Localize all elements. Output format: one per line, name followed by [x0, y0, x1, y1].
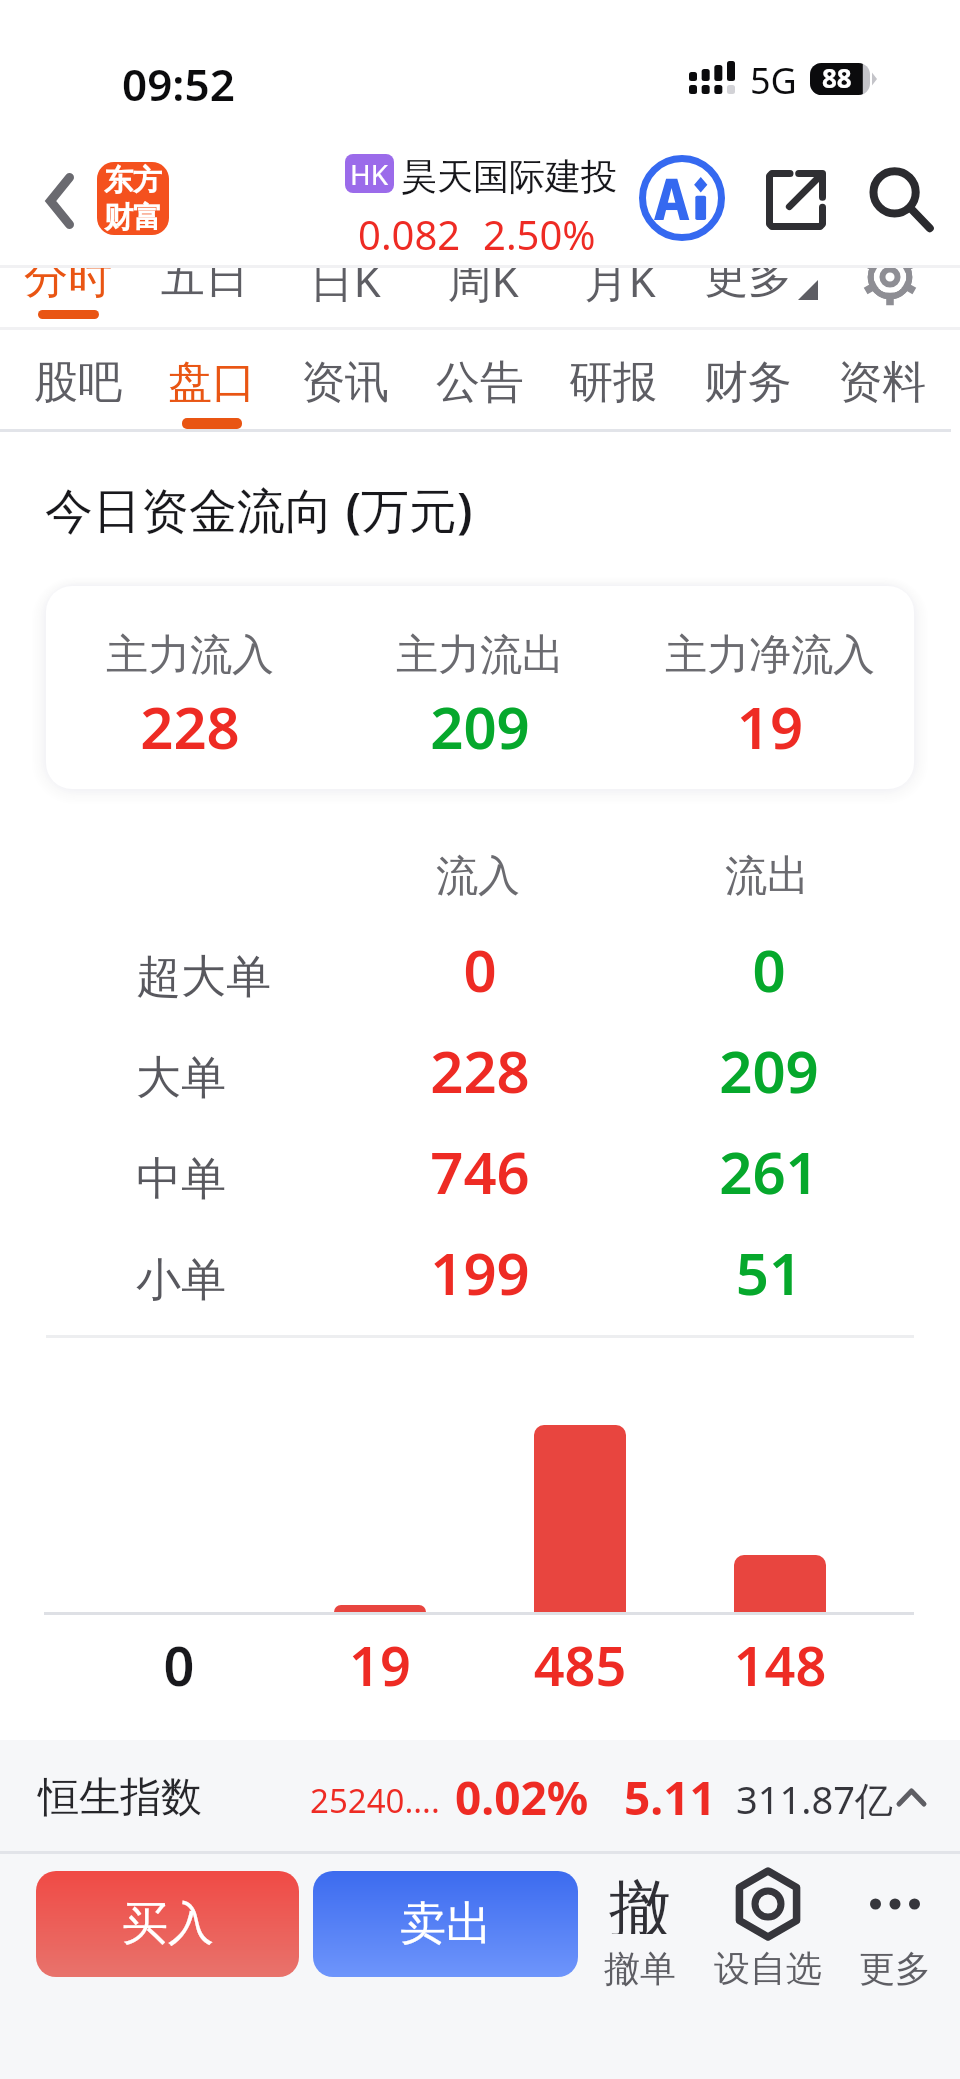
- button[interactable]: Share: [751, 155, 841, 245]
- staticText: 买入: [122, 1895, 214, 1953]
- button[interactable]: 资讯: [279, 327, 411, 432]
- staticText: 0: [619, 930, 919, 1009]
- staticText: 分时: [0, 266, 136, 305]
- button[interactable]: 更多: [833, 1860, 957, 1995]
- button[interactable]: 恒生指数: [0, 1740, 960, 1851]
- staticText: 流入: [328, 850, 628, 903]
- staticText: 19: [260, 1628, 500, 1702]
- button[interactable]: 公告: [414, 327, 546, 432]
- button[interactable]: Search: [856, 155, 946, 245]
- button[interactable]: Back: [20, 161, 100, 241]
- button[interactable]: 超大单: [0, 921, 960, 1022]
- staticText: 资讯: [279, 355, 411, 410]
- staticText: 财务: [682, 355, 814, 410]
- staticText: 卖出: [400, 1895, 492, 1953]
- staticText: 0: [330, 930, 630, 1009]
- staticText: 5G: [750, 56, 797, 105]
- staticText: 流出: [617, 850, 917, 903]
- staticText: 月K: [552, 266, 688, 310]
- staticText: 261: [619, 1132, 919, 1211]
- staticText: HK: [350, 155, 389, 193]
- staticText: 209: [619, 1031, 919, 1110]
- button[interactable]: 研报: [547, 327, 679, 432]
- button[interactable]: 大单: [0, 1022, 960, 1123]
- staticText: 19: [620, 687, 920, 766]
- staticText: 盘口: [146, 355, 278, 410]
- staticText: 主力流入: [40, 629, 340, 682]
- staticText: 5.11: [624, 1766, 716, 1829]
- staticText: 周K: [415, 266, 551, 310]
- button[interactable]: 卖出: [313, 1871, 578, 1977]
- staticText: 0.02%: [455, 1766, 589, 1829]
- staticText: 研报: [547, 355, 679, 410]
- staticText: 昊天国际建投: [401, 154, 617, 199]
- button[interactable]: 日K: [277, 266, 413, 327]
- staticText: 日K: [277, 266, 413, 310]
- staticText: 公告: [414, 355, 546, 410]
- button[interactable]: 分时: [0, 266, 136, 327]
- button[interactable]: 小单: [0, 1224, 960, 1325]
- staticText: 小单: [136, 1252, 226, 1309]
- button[interactable]: 中单: [0, 1123, 960, 1224]
- staticText: 更多: [833, 1946, 957, 1991]
- button[interactable]: Chart settings: [855, 266, 925, 327]
- staticText: 大单: [136, 1050, 226, 1107]
- button[interactable]: 撤: [578, 1860, 702, 1995]
- button[interactable]: 盘口: [146, 327, 278, 432]
- staticText: 主力流出: [330, 629, 630, 682]
- staticText: 2.50%: [483, 207, 596, 261]
- button[interactable]: 更多: [690, 266, 840, 327]
- staticText: 五日: [137, 266, 273, 305]
- staticText: 更多: [704, 266, 792, 305]
- staticText: 228: [330, 1031, 630, 1110]
- staticText: 财富: [104, 199, 162, 235]
- button[interactable]: AI assistant: [635, 151, 729, 245]
- staticText: 设自选: [706, 1946, 830, 1991]
- staticText: 746: [330, 1132, 630, 1211]
- staticText: 209: [330, 687, 630, 766]
- button[interactable]: 月K: [552, 266, 688, 327]
- button[interactable]: 五日: [137, 266, 273, 327]
- staticText: 超大单: [136, 949, 271, 1006]
- staticText: 中单: [136, 1151, 226, 1208]
- staticText: 88: [822, 60, 852, 95]
- button[interactable]: 股吧: [12, 327, 144, 432]
- staticText: 311.87亿: [736, 1773, 893, 1825]
- staticText: 资料: [816, 355, 948, 410]
- staticText: 25240....: [310, 1778, 440, 1823]
- staticText: 485: [460, 1628, 700, 1702]
- staticText: 228: [40, 687, 340, 766]
- button[interactable]: 财务: [682, 327, 814, 432]
- staticText: 恒生指数: [38, 1772, 202, 1824]
- staticText: 0.082: [358, 207, 461, 261]
- staticText: 0: [59, 1628, 299, 1702]
- button[interactable]: 周K: [415, 266, 551, 327]
- staticText: 股吧: [12, 355, 144, 410]
- staticText: 今日资金流向 (万元): [45, 477, 473, 543]
- staticText: 主力净流入: [620, 629, 920, 682]
- button[interactable]: 资料: [816, 327, 948, 432]
- staticText: 东方: [104, 162, 162, 199]
- staticText: 09:52: [122, 54, 235, 114]
- staticText: 199: [330, 1233, 630, 1312]
- staticText: 撤单: [578, 1946, 702, 1991]
- staticText: 撤: [609, 1870, 671, 1934]
- button[interactable]: East Money home: [97, 162, 169, 235]
- staticText: 148: [660, 1628, 900, 1702]
- button[interactable]: 设自选: [706, 1860, 830, 1995]
- staticText: 51: [619, 1233, 919, 1312]
- button[interactable]: 买入: [36, 1871, 299, 1977]
